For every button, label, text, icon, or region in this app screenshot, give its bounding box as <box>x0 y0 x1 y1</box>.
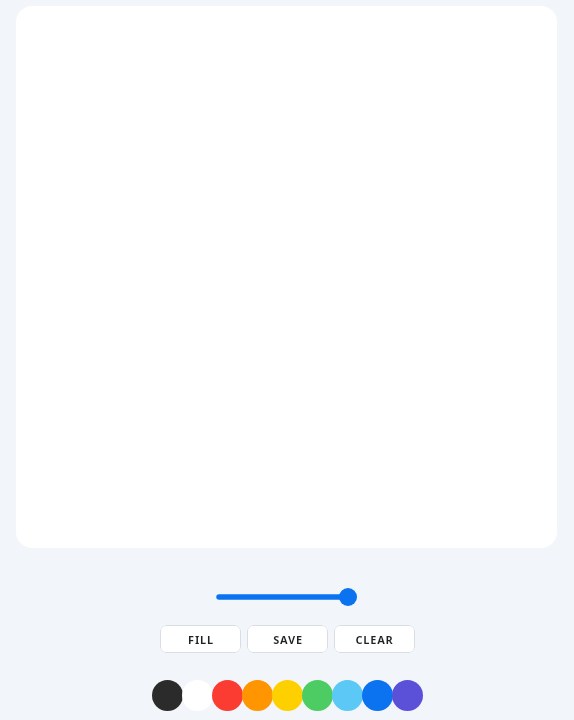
button[interactable]: Colour 6 <box>332 680 363 711</box>
button[interactable]: Brush size <box>217 578 357 616</box>
button[interactable]: FILL <box>160 625 241 653</box>
staticText: SAVE <box>273 632 303 647</box>
staticText: FILL <box>188 632 214 647</box>
button[interactable]: Colour 0 <box>152 680 183 711</box>
button[interactable]: Colour 5 <box>302 680 333 711</box>
button[interactable]: Colour 7 <box>362 680 393 711</box>
button[interactable]: SAVE <box>247 625 328 653</box>
button[interactable]: Colour 4 <box>272 680 303 711</box>
button[interactable]: CLEAR <box>334 625 415 653</box>
staticText: CLEAR <box>355 632 394 647</box>
button[interactable]: Colour 2 <box>212 680 243 711</box>
button[interactable]: Colour 3 <box>242 680 273 711</box>
button[interactable]: Colour 8 <box>392 680 423 711</box>
button[interactable]: Colour 1 <box>182 680 213 711</box>
